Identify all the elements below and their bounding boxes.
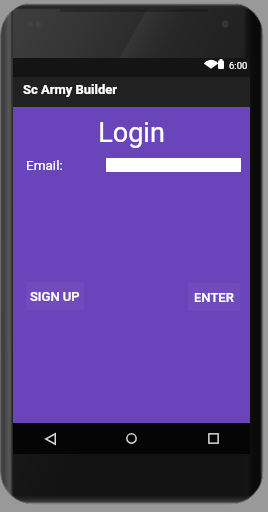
staticText: Login xyxy=(13,117,250,149)
staticText: Email: xyxy=(26,157,63,173)
button[interactable]: ENTER xyxy=(188,283,240,311)
button[interactable]: Recent apps xyxy=(177,423,249,454)
staticText: SIGN UP xyxy=(30,289,80,304)
staticText: 6:00 xyxy=(229,60,248,71)
staticText: ENTER xyxy=(194,290,234,305)
button[interactable]: SIGN UP xyxy=(26,282,84,310)
button[interactable]: Home xyxy=(95,423,168,454)
staticText: Sc Army Builder xyxy=(23,82,118,97)
button[interactable]: Back xyxy=(16,423,84,454)
